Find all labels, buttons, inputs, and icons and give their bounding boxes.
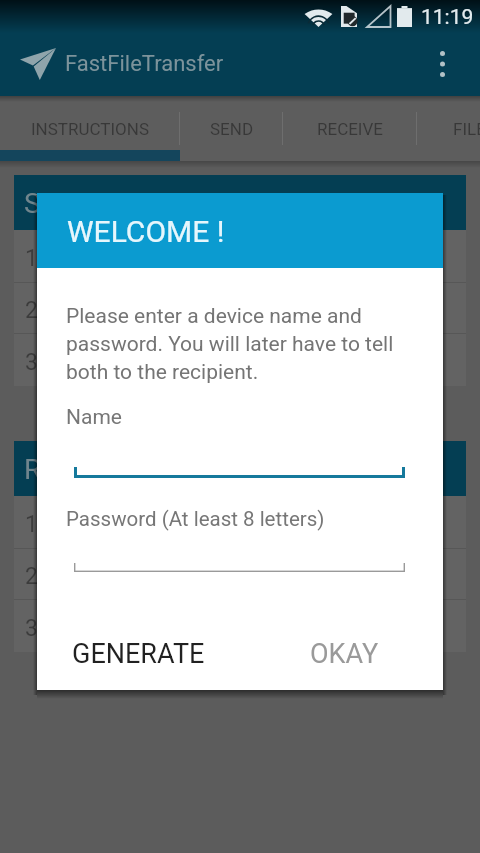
staticText: FILES: [453, 119, 480, 139]
staticText: 3.: [25, 349, 44, 376]
staticText: Lorem ipsum dolor sit: [56, 300, 231, 321]
staticText: 2.: [25, 563, 44, 590]
button[interactable]: OKAY: [294, 626, 395, 682]
staticText: 11:19: [421, 5, 474, 30]
staticText: RECEIVE: [317, 119, 383, 139]
button[interactable]: More options: [418, 40, 466, 88]
staticText: FastFileTransfer: [65, 51, 224, 77]
button[interactable]: RECEIVE: [283, 96, 417, 161]
staticText: 3.: [25, 615, 44, 642]
staticText: 1.: [25, 245, 44, 272]
staticText: Lorem ipsum dolor sit: [56, 514, 231, 535]
staticText: Lorem ipsum dolor sit: [56, 248, 231, 269]
staticText: Please enter a device name and password.…: [66, 304, 394, 384]
staticText: 1.: [25, 511, 44, 538]
staticText: 2.: [25, 297, 44, 324]
button[interactable]: SEND: [180, 96, 283, 161]
staticText: Name: [66, 405, 122, 430]
staticText: RECEIVING FILES: [24, 453, 242, 486]
staticText: WELCOME !: [67, 214, 225, 249]
staticText: Lorem ipsum dolor sit: [56, 566, 231, 587]
button[interactable]: INSTRUCTIONS: [0, 96, 180, 161]
staticText: SEND: [210, 119, 254, 139]
button[interactable]: GENERATE: [56, 626, 221, 682]
staticText: GENERATE: [72, 638, 205, 670]
staticText: Lorem ipsum dolor sit: [56, 352, 231, 373]
staticText: OKAY: [310, 638, 379, 670]
staticText: INSTRUCTIONS: [31, 119, 149, 139]
staticText: SENDING FILES: [24, 187, 220, 220]
staticText: Password (At least 8 letters): [66, 507, 325, 531]
button[interactable]: FILES: [417, 96, 480, 161]
